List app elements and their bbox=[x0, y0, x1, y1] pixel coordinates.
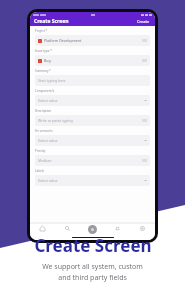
staticText: Create Screen bbox=[34, 18, 69, 25]
staticText: Select value bbox=[38, 178, 58, 183]
staticText: Medium bbox=[38, 158, 52, 163]
button[interactable]: Write or paste typing bbox=[35, 115, 150, 126]
staticText: Component/s bbox=[35, 89, 55, 93]
staticText: Description bbox=[35, 109, 52, 113]
staticText: Create Screen bbox=[34, 234, 152, 257]
staticText: Project * bbox=[35, 29, 48, 33]
button[interactable]: Start typing here bbox=[35, 75, 150, 86]
staticText: Write or paste typing bbox=[38, 118, 73, 123]
button[interactable]: Home bbox=[30, 223, 55, 234]
button[interactable]: Platform Development bbox=[35, 35, 150, 46]
staticText: Bug bbox=[44, 58, 51, 63]
staticText: Summary * bbox=[35, 69, 51, 73]
button[interactable]: Select value bbox=[35, 95, 150, 106]
button[interactable]: Search bbox=[55, 223, 80, 234]
button[interactable]: Profile bbox=[130, 223, 155, 234]
staticText: Select value bbox=[38, 138, 58, 143]
staticText: Priority bbox=[35, 149, 46, 153]
button[interactable]: Notifications bbox=[105, 223, 130, 234]
staticText: Fix version/s bbox=[35, 129, 53, 133]
staticText: Platform Development bbox=[44, 38, 82, 43]
button[interactable]: Select value bbox=[35, 135, 150, 146]
staticText: Labels bbox=[35, 169, 45, 173]
button[interactable]: Create bbox=[136, 18, 151, 25]
button[interactable]: Bug bbox=[35, 55, 150, 66]
staticText: We support all system, custom and third … bbox=[42, 262, 143, 282]
staticText: Issue type * bbox=[35, 49, 52, 53]
staticText: Select value bbox=[38, 98, 58, 103]
button[interactable]: Create bbox=[88, 225, 97, 234]
staticText: Start typing here bbox=[38, 78, 66, 83]
button[interactable]: Medium bbox=[35, 155, 150, 166]
staticText: Create bbox=[137, 19, 150, 24]
button[interactable]: Select value bbox=[35, 175, 150, 186]
